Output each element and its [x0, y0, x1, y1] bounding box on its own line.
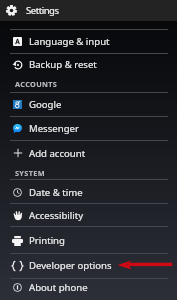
- button[interactable]: Messenger: [0, 116, 177, 141]
- button[interactable]: Language & input: [0, 29, 177, 53]
- staticText: Google: [29, 98, 62, 111]
- button[interactable]: Google: [0, 92, 177, 116]
- button[interactable]: Add account: [0, 141, 177, 165]
- staticText: Add account: [29, 147, 86, 160]
- staticText: About phone: [29, 281, 88, 294]
- staticText: Messenger: [29, 122, 79, 135]
- button[interactable]: Printing: [0, 227, 177, 254]
- other: Settings: [6, 5, 17, 16]
- staticText: Settings: [26, 4, 59, 17]
- staticText: Backup & reset: [29, 58, 97, 71]
- staticText: Language & input: [29, 35, 110, 48]
- button[interactable]: Developer options: [0, 253, 177, 278]
- button[interactable]: About phone: [0, 278, 177, 297]
- staticText: Accessibility: [29, 209, 84, 222]
- staticText: Date & time: [29, 186, 83, 199]
- staticText: Developer options: [29, 259, 112, 272]
- staticText: SYSTEM: [15, 168, 45, 178]
- button[interactable]: Date & time: [0, 180, 177, 204]
- button[interactable]: Backup & reset: [0, 53, 177, 76]
- staticText: ACCOUNTS: [15, 79, 58, 89]
- button[interactable]: Accessibility: [0, 203, 177, 227]
- staticText: Printing: [29, 234, 65, 247]
